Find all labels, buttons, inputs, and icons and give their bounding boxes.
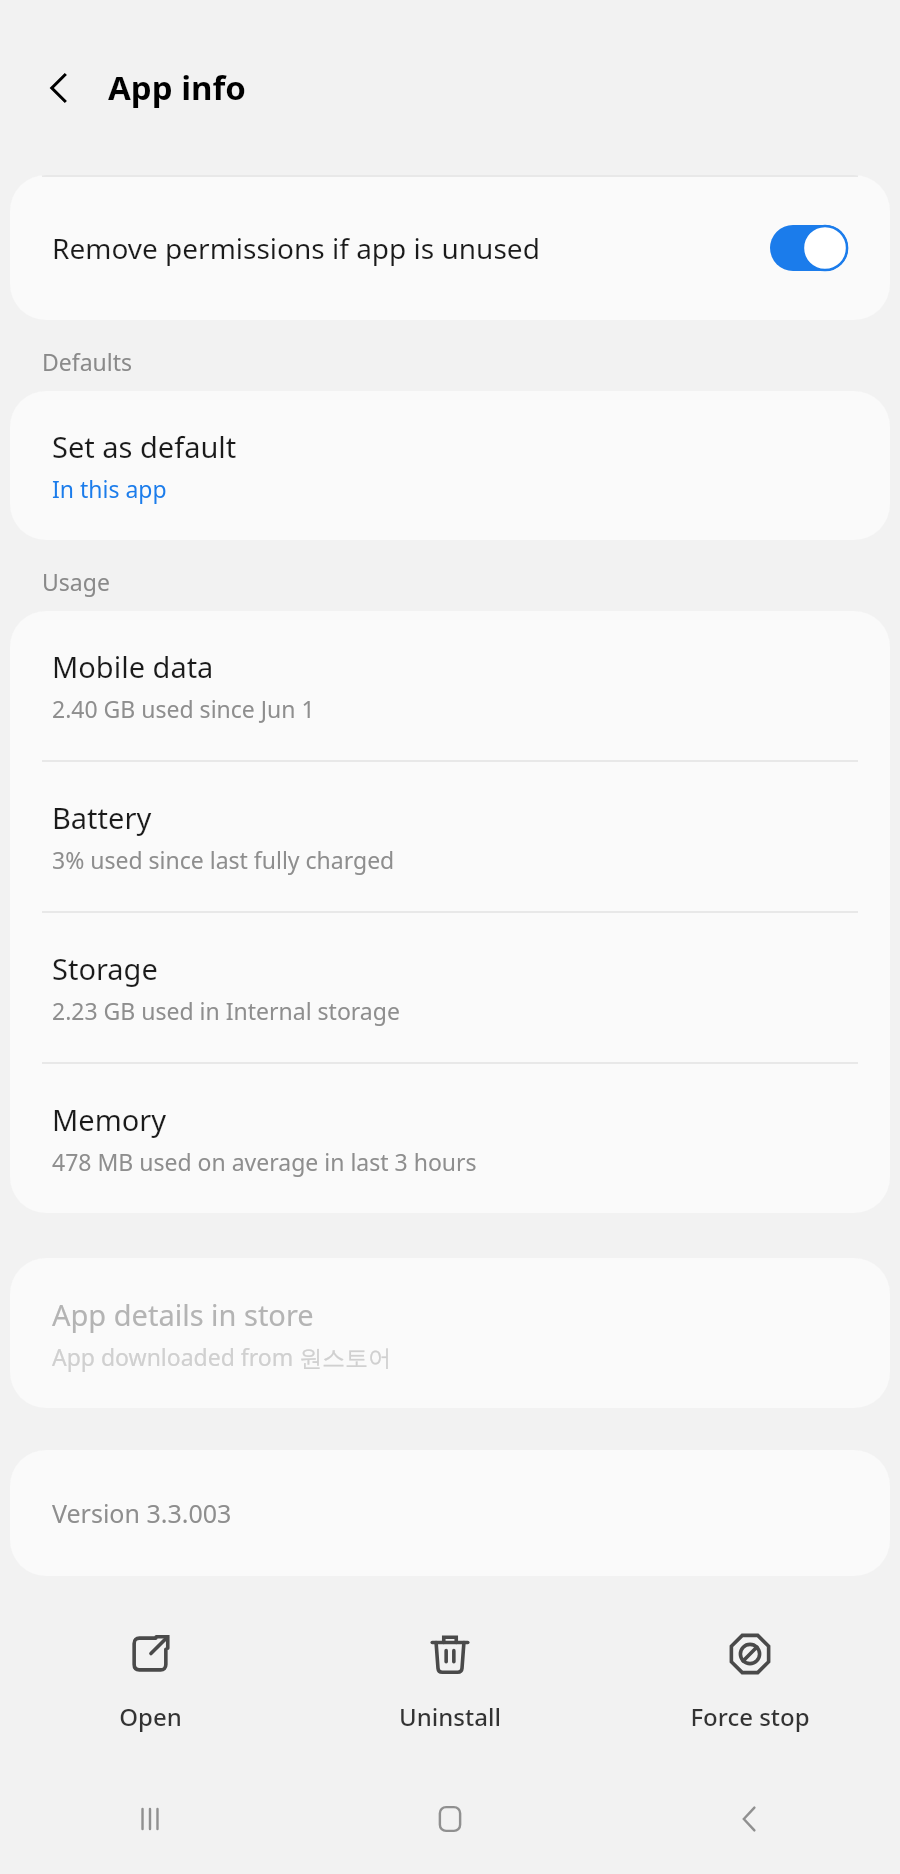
- staticText: In this app: [52, 473, 167, 504]
- staticText: Memory: [52, 1100, 167, 1139]
- staticText: Usage: [42, 566, 110, 597]
- staticText: Storage: [52, 949, 158, 988]
- staticText: Remove permissions if app is unused: [52, 229, 758, 267]
- staticText: App details in store: [52, 1295, 314, 1334]
- staticText: Uninstall: [399, 1700, 501, 1733]
- button[interactable]: Storage: [10, 913, 890, 1062]
- button[interactable]: Back: [600, 1764, 900, 1874]
- button[interactable]: Force stop: [600, 1599, 900, 1764]
- staticText: Force stop: [690, 1700, 810, 1733]
- button[interactable]: Memory: [10, 1064, 890, 1213]
- staticText: 2.23 GB used in Internal storage: [52, 995, 400, 1026]
- staticText: Open: [119, 1700, 182, 1733]
- button[interactable]: Recents: [0, 1764, 300, 1874]
- staticText: Version 3.3.003: [52, 1496, 232, 1530]
- button[interactable]: Uninstall: [300, 1599, 600, 1764]
- staticText: App info: [108, 65, 246, 110]
- staticText: 478 MB used on average in last 3 hours: [52, 1146, 477, 1177]
- staticText: Defaults: [42, 346, 133, 377]
- button[interactable]: Home: [300, 1764, 600, 1874]
- button[interactable]: Open: [0, 1599, 300, 1764]
- button[interactable]: Remove permissions toggle: [770, 225, 848, 271]
- button[interactable]: Back: [28, 57, 90, 119]
- staticText: Mobile data: [52, 647, 214, 686]
- staticText: 3% used since last fully charged: [52, 844, 395, 875]
- staticText: 2.40 GB used since Jun 1: [52, 693, 315, 724]
- staticText: Battery: [52, 798, 152, 837]
- button[interactable]: Set as default: [10, 391, 890, 540]
- button[interactable]: Remove permissions if app is unused: [10, 175, 890, 320]
- staticText: App downloaded from 원스토어: [52, 1341, 392, 1372]
- staticText: Set as default: [52, 427, 237, 466]
- button[interactable]: Mobile data: [10, 611, 890, 760]
- button[interactable]: Battery: [10, 762, 890, 911]
